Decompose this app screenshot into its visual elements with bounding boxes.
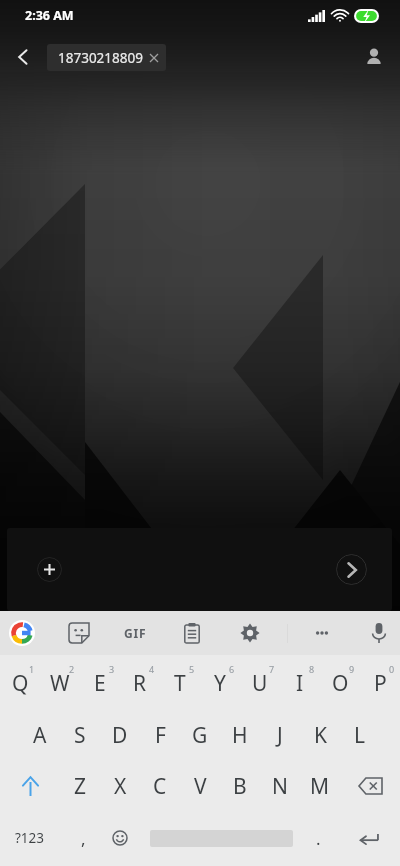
staticText: G <box>192 721 208 750</box>
button[interactable]: T <box>160 659 200 708</box>
button[interactable]: Emoji <box>101 812 139 864</box>
staticText: 3 <box>109 663 115 675</box>
button[interactable]: S <box>60 710 100 760</box>
button[interactable]: K <box>300 710 340 760</box>
button[interactable]: V <box>180 761 220 811</box>
button[interactable]: Enter <box>340 812 396 864</box>
button[interactable]: Y <box>200 659 240 708</box>
staticText: T <box>174 669 186 698</box>
button[interactable]: I <box>280 659 320 708</box>
button[interactable]: Clipboard <box>170 611 214 655</box>
staticText: 4 <box>149 663 155 675</box>
button[interactable]: More options <box>300 611 344 655</box>
staticText: Z <box>74 772 87 801</box>
staticText: 2:36 AM <box>25 7 74 24</box>
button[interactable]: GIF <box>113 611 157 655</box>
staticText: O <box>332 669 349 698</box>
button[interactable]: Send <box>336 554 367 585</box>
staticText: 7 <box>269 663 275 675</box>
button[interactable]: R <box>120 659 160 708</box>
button[interactable]: Back <box>5 39 41 75</box>
staticText: ?123 <box>15 829 45 847</box>
staticText: 0 <box>389 663 395 675</box>
staticText: I <box>296 669 304 698</box>
button[interactable]: W <box>40 659 80 708</box>
staticText: U <box>252 669 268 698</box>
staticText: 1 <box>29 663 35 675</box>
button[interactable]: B <box>220 761 260 811</box>
staticText: P <box>374 669 387 698</box>
staticText: M <box>310 772 330 801</box>
staticText: Y <box>214 669 226 698</box>
staticText: R <box>133 669 147 698</box>
button[interactable]: L <box>340 710 380 760</box>
button[interactable]: N <box>260 761 300 811</box>
staticText: Q <box>12 669 29 698</box>
button[interactable]: J <box>260 710 300 760</box>
staticText: J <box>277 721 283 750</box>
staticText: . <box>316 827 321 850</box>
button[interactable]: Contacts <box>356 39 392 75</box>
staticText: 2 <box>69 663 75 675</box>
staticText: A <box>33 721 47 750</box>
button[interactable]: Q <box>0 659 40 708</box>
button[interactable]: P <box>360 659 400 708</box>
staticText: D <box>112 721 128 750</box>
button[interactable]: Add attachment <box>37 557 62 582</box>
staticText: X <box>114 772 127 801</box>
button[interactable]: M <box>300 761 340 811</box>
button[interactable]: Space <box>150 812 293 864</box>
button[interactable]: U <box>240 659 280 708</box>
button[interactable]: , <box>64 812 102 864</box>
button[interactable]: X <box>100 761 140 811</box>
staticText: L <box>354 721 366 750</box>
staticText: E <box>94 669 106 698</box>
button[interactable]: A <box>20 710 60 760</box>
button[interactable]: G <box>180 710 220 760</box>
staticText: GIF <box>124 625 147 641</box>
button[interactable]: Google <box>0 611 44 655</box>
staticText: 6 <box>229 663 235 675</box>
button[interactable]: F <box>140 710 180 760</box>
button[interactable]: C <box>140 761 180 811</box>
staticText: F <box>155 721 166 750</box>
staticText: W <box>50 669 70 698</box>
button[interactable]: Stickers <box>57 611 101 655</box>
button[interactable]: H <box>220 710 260 760</box>
staticText: K <box>314 721 327 750</box>
button[interactable]: E <box>80 659 120 708</box>
button[interactable]: Shift <box>0 761 60 811</box>
button[interactable]: . <box>299 812 337 864</box>
button[interactable]: Settings <box>228 611 272 655</box>
staticText: 9 <box>349 663 355 675</box>
staticText: 18730218809 <box>58 49 143 67</box>
staticText: B <box>233 772 247 801</box>
staticText: 5 <box>189 663 195 675</box>
staticText: S <box>74 721 86 750</box>
button[interactable]: Z <box>60 761 100 811</box>
staticText: , <box>81 827 86 850</box>
staticText: V <box>194 772 207 801</box>
staticText: 8 <box>309 663 315 675</box>
button[interactable]: D <box>100 710 140 760</box>
button[interactable]: 18730218809 <box>47 44 166 71</box>
button[interactable]: Backspace <box>340 761 400 811</box>
staticText: C <box>153 772 167 801</box>
staticText: H <box>232 721 248 750</box>
button[interactable]: Voice input <box>357 611 400 655</box>
button[interactable]: Symbols <box>0 812 60 864</box>
button[interactable]: O <box>320 659 360 708</box>
staticText: N <box>272 772 288 801</box>
